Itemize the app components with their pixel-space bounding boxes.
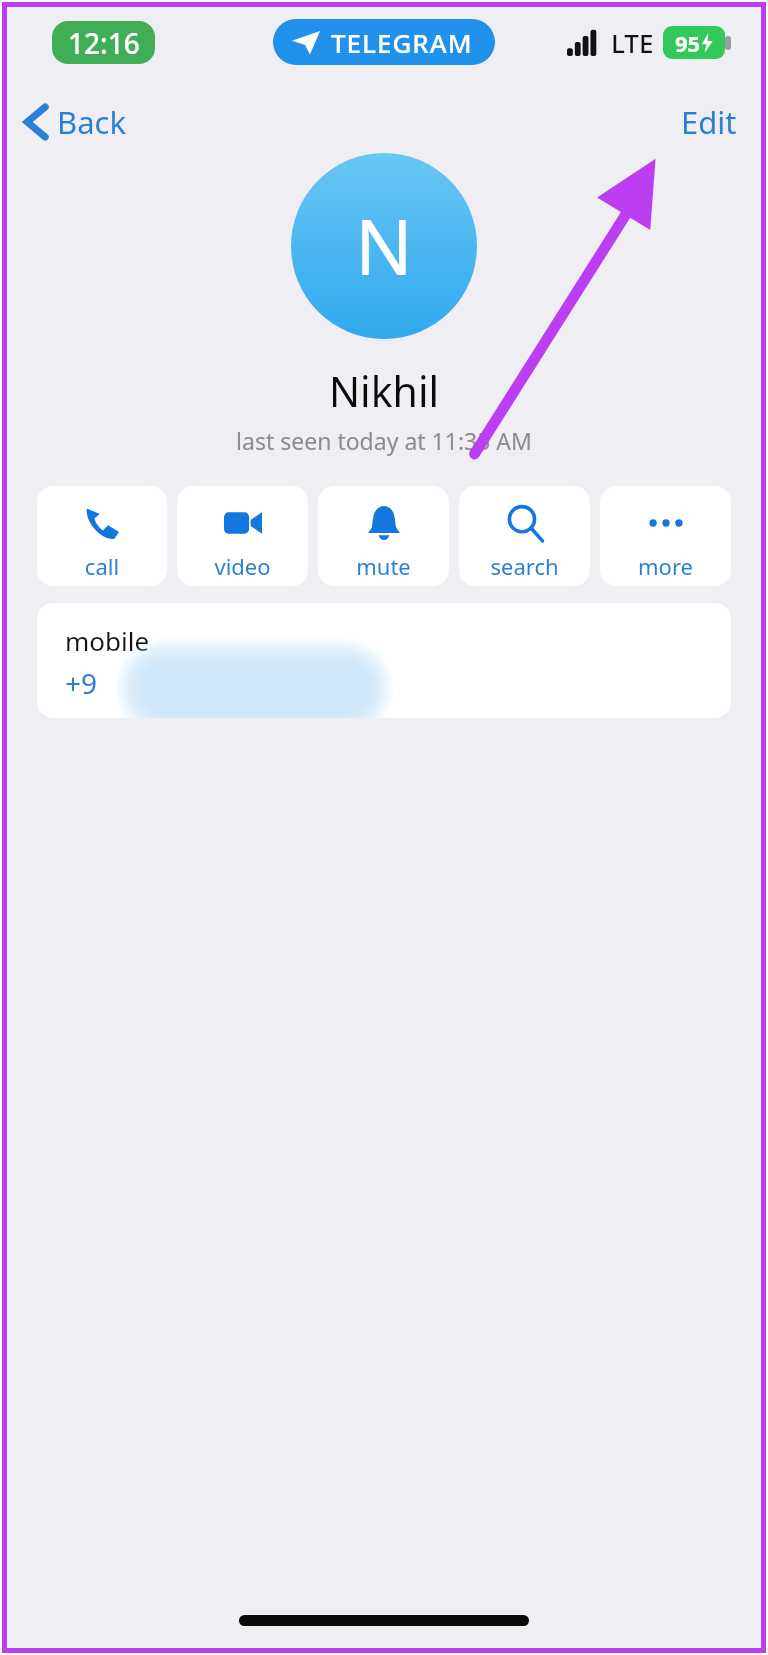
button[interactable]: video — [177, 486, 308, 586]
staticText: search — [459, 551, 590, 581]
staticText: video — [177, 551, 308, 581]
staticText: +9 — [65, 664, 98, 702]
staticText: mute — [318, 551, 449, 581]
staticText: Nikhil — [7, 363, 761, 419]
button[interactable]: mobile — [37, 603, 731, 718]
staticText: LTE — [611, 25, 654, 60]
button[interactable]: Back — [7, 95, 140, 149]
button[interactable]: search — [459, 486, 590, 586]
staticText: Edit — [681, 101, 737, 143]
button[interactable]: mute — [318, 486, 449, 586]
button[interactable]: Edit — [657, 93, 761, 151]
staticText: more — [600, 551, 731, 581]
staticText: 12:16 — [68, 24, 140, 62]
staticText: TELEGRAM — [331, 25, 473, 60]
button[interactable]: more — [600, 486, 731, 586]
staticText: Back — [57, 101, 126, 143]
staticText: 95 — [675, 28, 701, 58]
staticText: last seen today at 11:35 AM — [7, 425, 761, 456]
button[interactable]: call — [37, 486, 167, 586]
staticText: call — [37, 551, 167, 581]
staticText: N — [355, 194, 413, 298]
staticText: mobile — [65, 623, 150, 658]
